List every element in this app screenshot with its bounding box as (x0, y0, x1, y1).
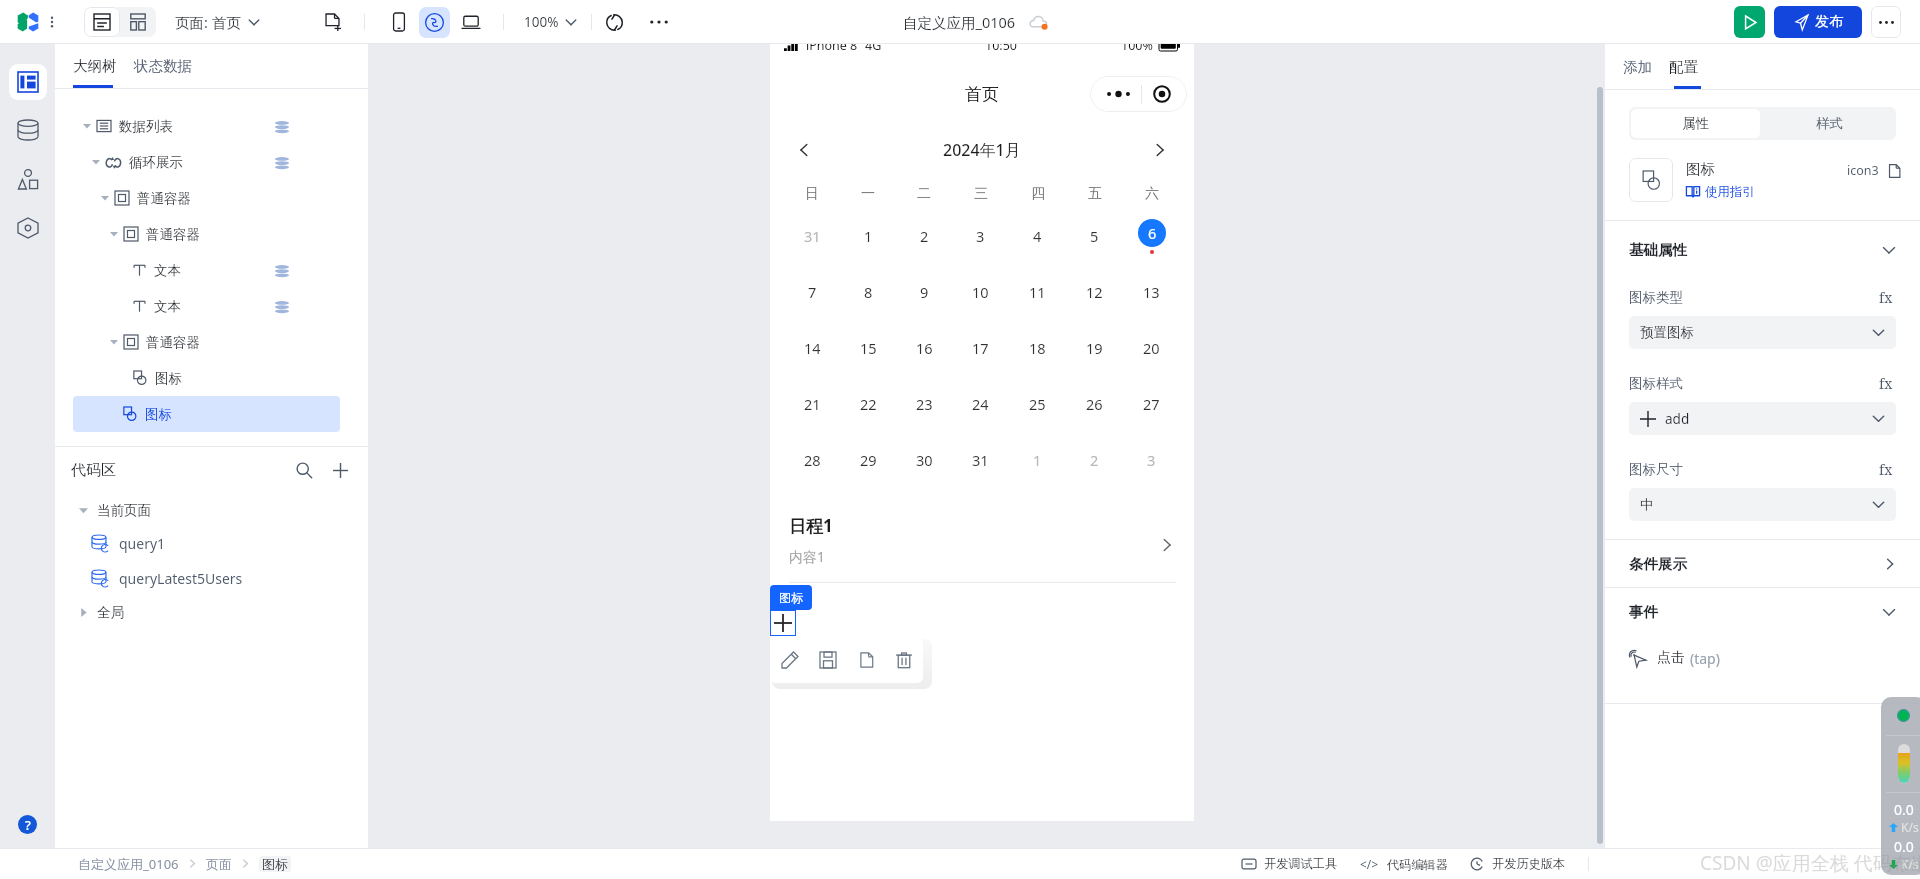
button[interactable]: Formula (1876, 459, 1896, 479)
button[interactable]: 事件 (1605, 588, 1920, 635)
button[interactable]: Components (9, 161, 47, 197)
button[interactable]: Help (18, 815, 37, 834)
button[interactable]: query1 (55, 526, 368, 561)
button[interactable]: Desktop preview (459, 10, 483, 34)
button[interactable]: 文本 (55, 288, 368, 324)
button[interactable]: 29 (860, 450, 877, 470)
button[interactable]: 12 (1086, 282, 1103, 302)
button[interactable]: Outline view (84, 7, 120, 37)
button[interactable]: 普通容器 (55, 180, 368, 216)
button[interactable]: 28 (804, 450, 821, 470)
button[interactable]: 图标 (73, 396, 340, 432)
button[interactable]: 14 (804, 338, 821, 358)
button[interactable]: 中 (1629, 488, 1896, 521)
button[interactable]: Logo (17, 12, 39, 32)
button[interactable]: Save (809, 637, 847, 683)
button[interactable]: 3 (976, 226, 985, 246)
button[interactable]: 1 (1033, 450, 1042, 470)
button[interactable]: 大纲树 (73, 57, 117, 75)
button[interactable]: 30 (916, 450, 933, 470)
button[interactable]: 26 (1086, 394, 1103, 414)
button[interactable]: More options (648, 11, 670, 33)
button[interactable]: Previous month (792, 138, 816, 162)
button[interactable]: add (1629, 402, 1896, 435)
button[interactable]: 20 (1143, 338, 1160, 358)
button[interactable]: 条件展示 (1605, 540, 1920, 587)
button[interactable]: 属性 (1631, 109, 1760, 138)
button[interactable]: 预置图标 (1629, 316, 1896, 349)
button[interactable]: 18 (1029, 338, 1046, 358)
button[interactable]: 17 (972, 338, 989, 358)
button[interactable]: Add (328, 458, 352, 482)
button[interactable]: Phone preview (387, 10, 411, 34)
button[interactable]: 当前页面 (55, 494, 368, 526)
button[interactable]: Network status (1897, 709, 1910, 722)
button[interactable]: Delete (885, 637, 923, 683)
button[interactable]: 3 (1147, 450, 1156, 470)
button[interactable]: Formula (1876, 373, 1896, 393)
button[interactable]: Search (292, 458, 316, 482)
button[interactable]: 100% (524, 13, 577, 31)
button[interactable]: 11 (1029, 282, 1046, 302)
button[interactable]: 页面 (206, 856, 232, 872)
button[interactable]: 9 (920, 282, 929, 302)
button[interactable]: More (42, 12, 62, 32)
button[interactable]: 开发历史版本 (1470, 856, 1566, 871)
button[interactable]: 21 (804, 394, 821, 414)
button[interactable]: 1 (864, 226, 873, 246)
button[interactable]: 27 (1143, 394, 1160, 414)
button[interactable]: 状态数据 (134, 57, 192, 75)
button[interactable]: 添加 (1623, 58, 1652, 76)
button[interactable]: queryLatest5Users (55, 561, 368, 596)
button[interactable]: New page (320, 10, 344, 34)
button[interactable]: 31 (804, 226, 821, 246)
button[interactable]: 10 (972, 282, 989, 302)
button[interactable]: 2 (1090, 450, 1099, 470)
button[interactable]: 循环展示 (55, 144, 368, 180)
button[interactable]: Copy (847, 637, 885, 683)
button[interactable]: 配置 (1669, 58, 1698, 76)
button[interactable]: 23 (916, 394, 933, 414)
button[interactable]: 24 (972, 394, 989, 414)
button[interactable]: 样式 (1762, 107, 1896, 140)
button[interactable]: 16 (916, 338, 933, 358)
button[interactable]: 全局 (55, 596, 368, 628)
button[interactable]: 13 (1143, 282, 1160, 302)
button[interactable]: Copy id (1886, 163, 1902, 179)
button[interactable]: 31 (972, 450, 989, 470)
button[interactable]: 发布 (1774, 6, 1862, 38)
button[interactable]: 19 (1086, 338, 1103, 358)
button[interactable]: 8 (864, 282, 873, 302)
button[interactable]: 2 (920, 226, 929, 246)
button[interactable]: Overflow menu (1871, 6, 1901, 38)
button[interactable]: Grid view (120, 7, 156, 37)
button[interactable]: Pages (9, 64, 47, 100)
button[interactable]: 文本 (55, 252, 368, 288)
button[interactable]: 点击 (1605, 635, 1920, 681)
button[interactable]: Run (1734, 6, 1765, 38)
button[interactable]: 普通容器 (55, 216, 368, 252)
button[interactable]: 基础属性 (1629, 241, 1896, 259)
button[interactable]: 数据列表 (55, 108, 368, 144)
button[interactable]: 页面: 首页 (175, 12, 260, 32)
button[interactable]: Formula (1876, 287, 1896, 307)
button[interactable]: 7 (808, 282, 817, 302)
button[interactable]: 22 (860, 394, 877, 414)
button[interactable]: </> (1360, 856, 1448, 872)
button[interactable]: 图标 (55, 360, 368, 396)
button[interactable]: Edit (770, 637, 809, 683)
button[interactable]: 开发调试工具 (1242, 856, 1338, 871)
button[interactable]: 普通容器 (55, 324, 368, 360)
button[interactable]: 6 (1138, 219, 1166, 247)
button[interactable]: Data (9, 112, 47, 148)
button[interactable]: 自定义应用_0106 (78, 855, 179, 873)
button[interactable]: Refresh (602, 10, 626, 34)
button[interactable]: 25 (1029, 394, 1046, 414)
button[interactable]: Mini program preview (419, 7, 450, 38)
button[interactable]: 15 (860, 338, 877, 358)
button[interactable]: 4 (1033, 226, 1042, 246)
button[interactable]: 5 (1090, 226, 1099, 246)
button[interactable]: Next month (1148, 138, 1172, 162)
button[interactable]: Settings (9, 210, 47, 246)
button[interactable]: 使用指引 (1686, 184, 1755, 200)
